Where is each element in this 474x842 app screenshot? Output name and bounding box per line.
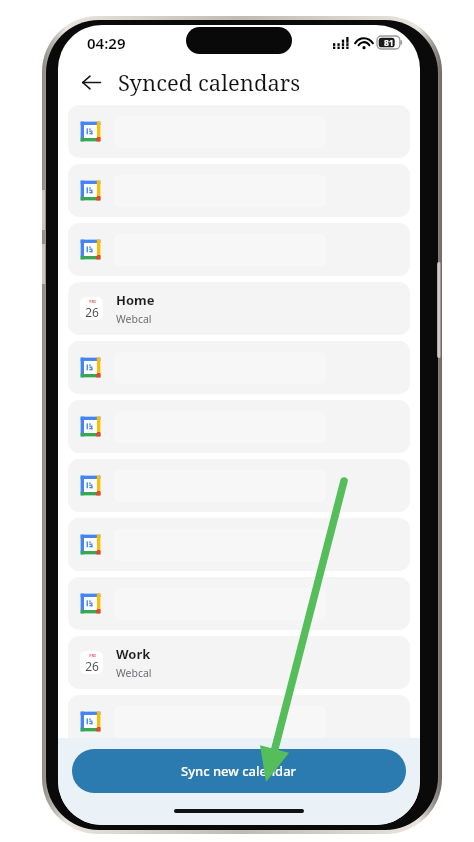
staticText: 81 (384, 37, 394, 49)
button[interactable] (68, 400, 410, 453)
button[interactable]: FRI (68, 636, 410, 689)
staticText: Webcal (116, 666, 152, 680)
button[interactable] (68, 164, 410, 217)
staticText: 04:29 (87, 33, 126, 53)
staticText: FRI (89, 653, 96, 658)
button[interactable] (68, 105, 410, 158)
staticText: Work (116, 645, 151, 663)
button[interactable] (68, 459, 410, 512)
button[interactable] (68, 223, 410, 276)
button[interactable] (68, 518, 410, 571)
button[interactable] (68, 577, 410, 630)
staticText: Webcal (116, 312, 152, 326)
button[interactable]: Sync new calendar (72, 749, 406, 793)
button[interactable] (68, 695, 410, 748)
button[interactable]: FRI (68, 282, 410, 335)
staticText: Sync new calendar (181, 762, 297, 780)
staticText: 26 (85, 658, 99, 674)
staticText: FRI (89, 299, 96, 304)
button[interactable] (68, 341, 410, 394)
staticText: 26 (85, 304, 99, 320)
staticText: Home (116, 291, 155, 309)
button[interactable]: Back (74, 65, 108, 99)
staticText: Synced calendars (118, 67, 301, 97)
